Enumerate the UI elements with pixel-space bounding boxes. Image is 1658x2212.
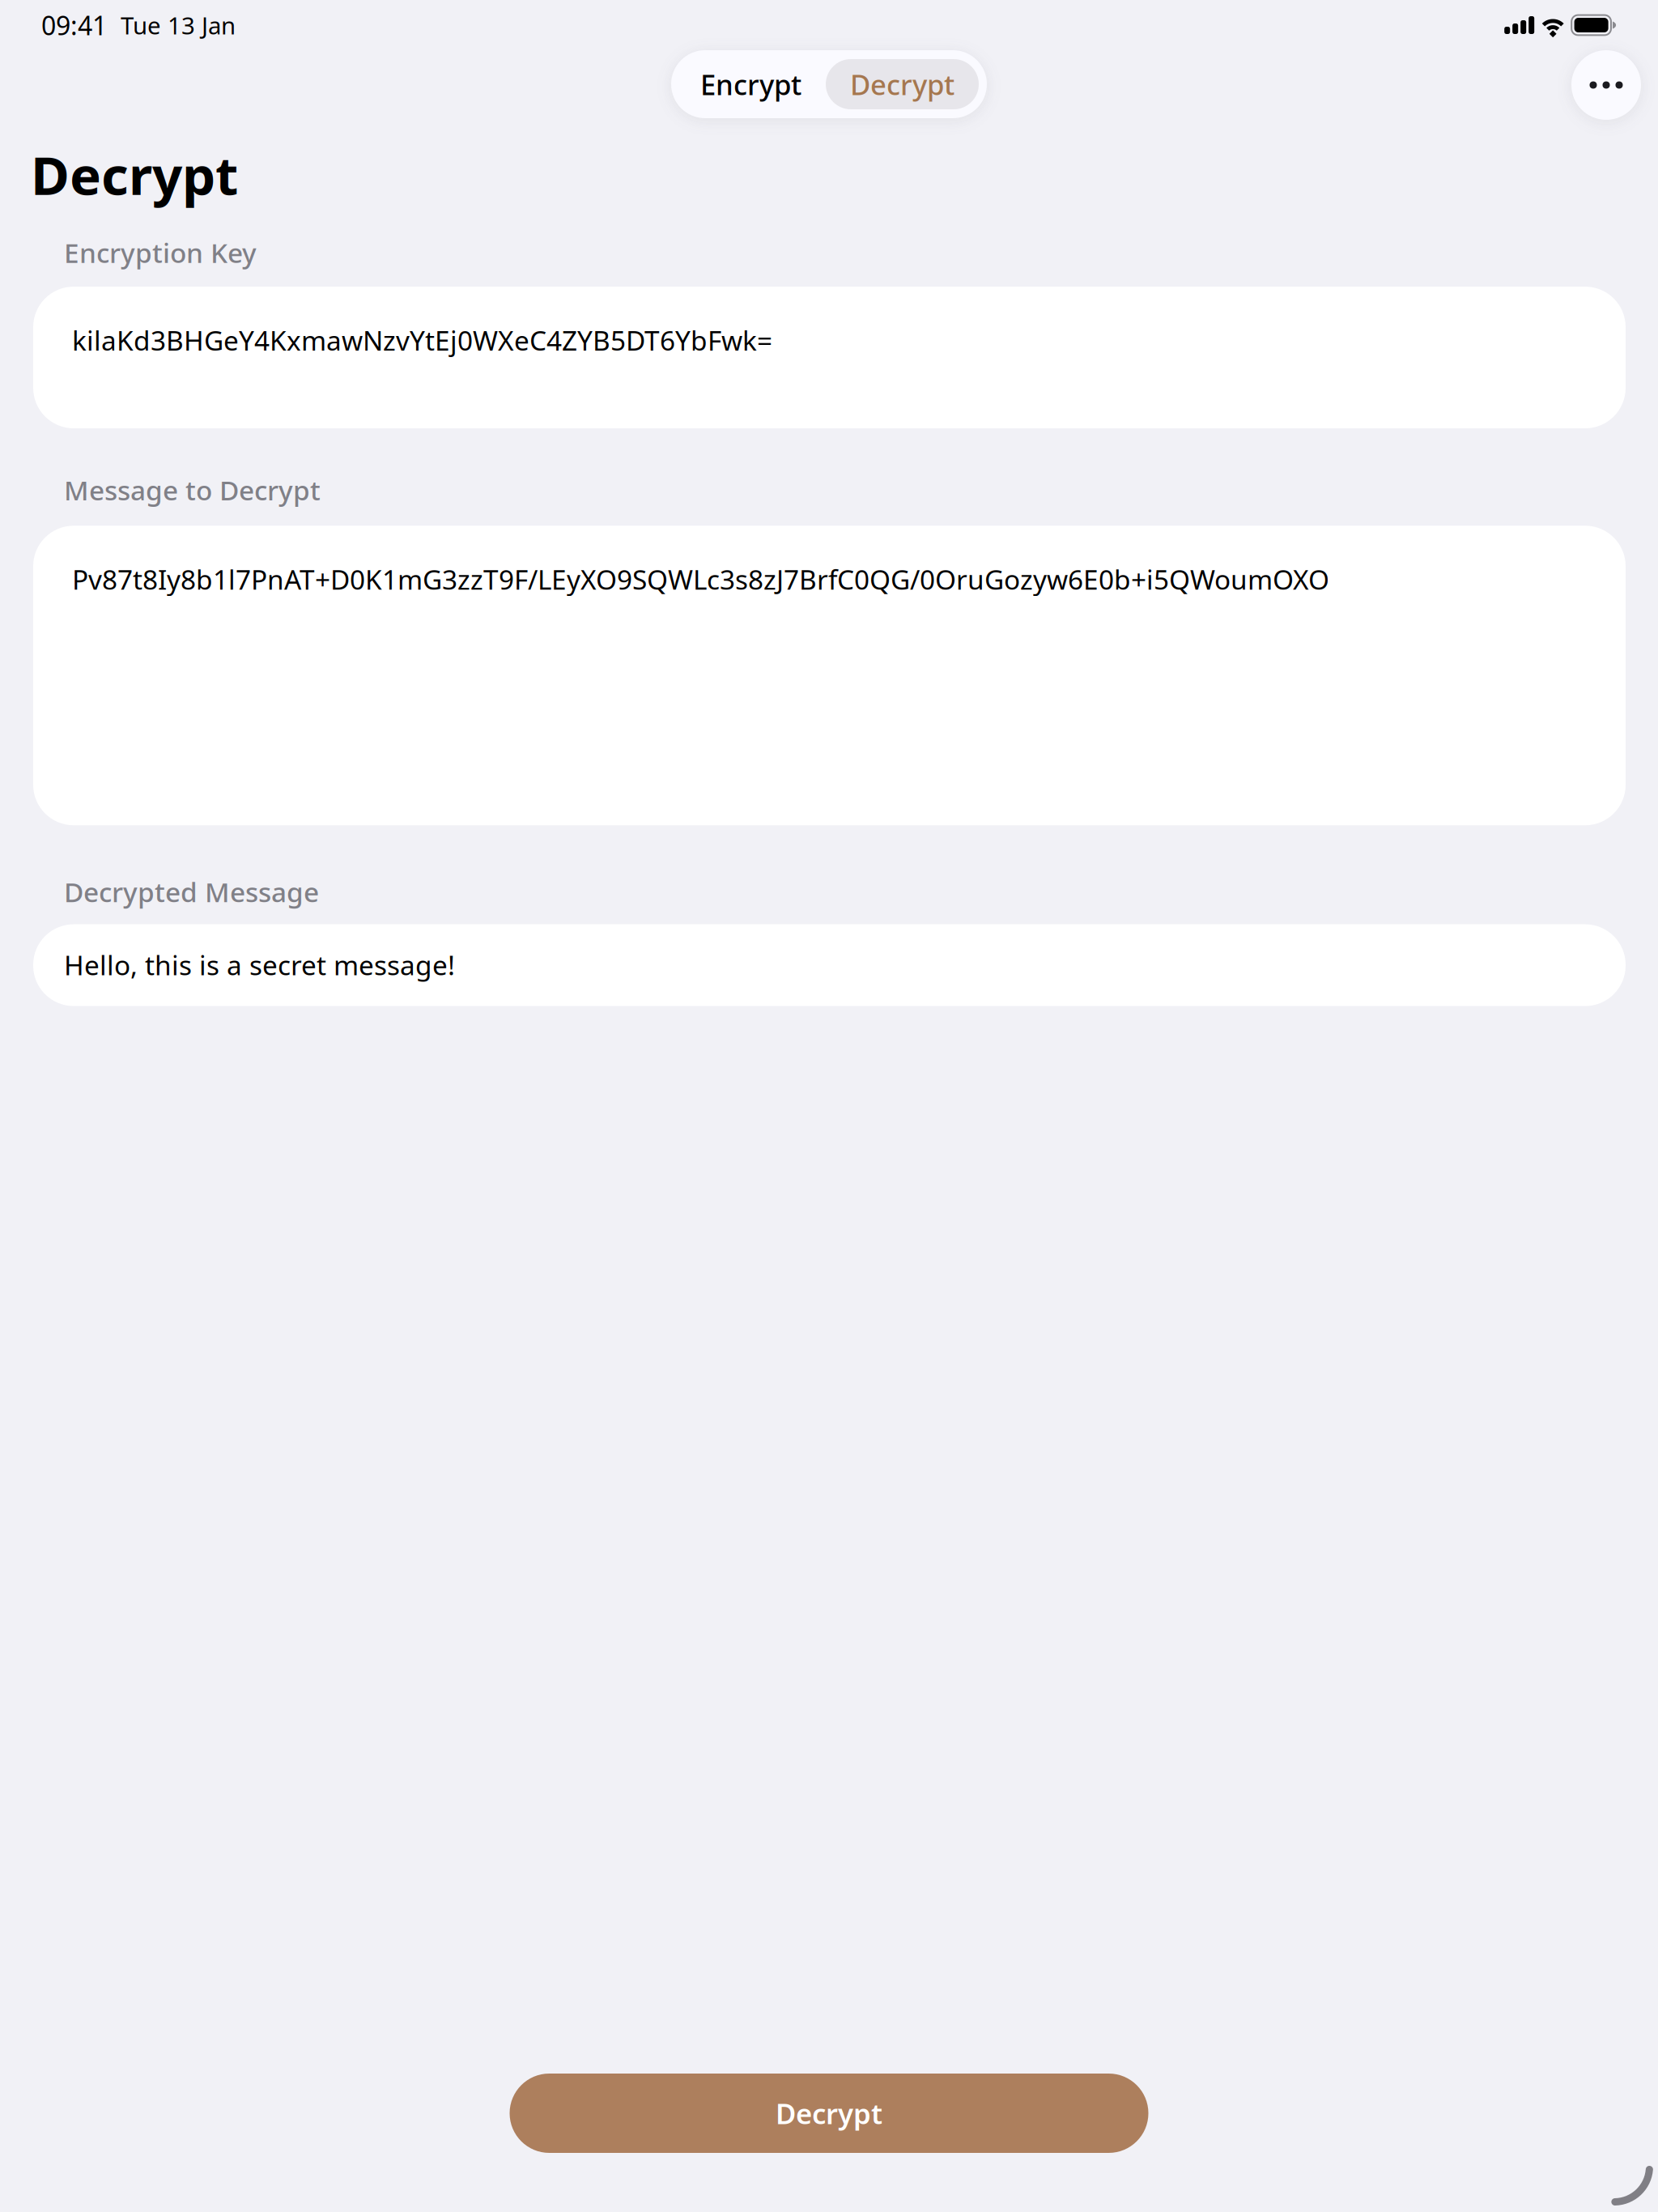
staticText: Decrypt xyxy=(776,2095,882,2132)
button[interactable]: More options xyxy=(1571,50,1641,120)
button[interactable]: Encrypt xyxy=(676,59,826,109)
staticText: Pv87t8Iy8b1l7PnAT+D0K1mG3zzT9F/LEyXO9SQW… xyxy=(72,561,1329,597)
staticText: Decrypted Message xyxy=(64,874,319,910)
button[interactable]: Decrypt xyxy=(826,59,979,109)
staticText: Message to Decrypt xyxy=(64,472,321,508)
staticText: Hello, this is a secret message! xyxy=(64,947,455,983)
staticText: Encryption Key xyxy=(64,235,257,271)
button[interactable]: Decrypt xyxy=(510,2074,1148,2153)
staticText: Decrypt xyxy=(31,139,238,210)
staticText: Decrypt xyxy=(850,66,954,103)
staticText: kilaKd3BHGeY4KxmawNzvYtEj0WXeC4ZYB5DT6Yb… xyxy=(72,322,772,358)
staticText: 09:41 xyxy=(41,8,107,42)
button[interactable]: kilaKd3BHGeY4KxmawNzvYtEj0WXeC4ZYB5DT6Yb… xyxy=(33,287,1626,428)
staticText: Tue 13 Jan xyxy=(121,9,236,41)
staticText: Encrypt xyxy=(700,66,801,103)
button[interactable]: Hello, this is a secret message! xyxy=(33,924,1626,1006)
button[interactable]: Pv87t8Iy8b1l7PnAT+D0K1mG3zzT9F/LEyXO9SQW… xyxy=(33,526,1626,825)
